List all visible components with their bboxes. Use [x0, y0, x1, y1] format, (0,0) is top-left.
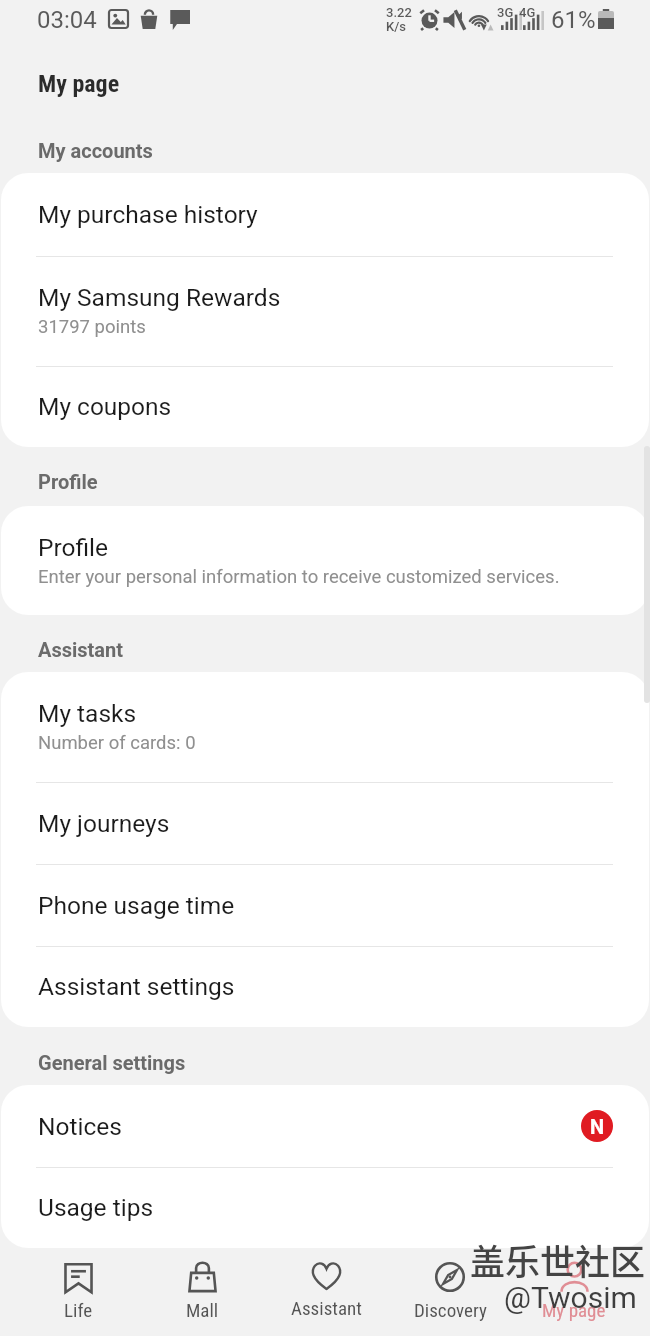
button[interactable]: My purchase history [0, 173, 650, 256]
staticText: My page [542, 1299, 606, 1321]
button[interactable]: Life [16, 1248, 140, 1336]
button[interactable]: Mall [140, 1248, 264, 1336]
staticText: Life [64, 1299, 93, 1321]
button[interactable]: Discovery [388, 1248, 512, 1336]
staticText: 3.22 [386, 5, 412, 20]
staticText: 03:04 [37, 6, 97, 34]
staticText: My journeys [38, 809, 170, 838]
staticText: K/s [386, 19, 406, 34]
staticText: My coupons [38, 392, 172, 421]
button[interactable]: My Samsung Rewards [0, 256, 650, 366]
staticText: Phone usage time [38, 891, 235, 920]
staticText: Number of cards: 0 [38, 732, 196, 754]
staticText: My purchase history [38, 200, 258, 229]
staticText: Usage tips [38, 1193, 154, 1222]
button[interactable]: My journeys [0, 782, 650, 864]
staticText: 3G [497, 5, 514, 20]
button[interactable]: Notices [0, 1085, 650, 1167]
staticText: 31797 points [38, 316, 146, 338]
button[interactable]: My page [512, 1248, 636, 1336]
staticText: Discovery [414, 1299, 487, 1321]
staticText: Enter your personal information to recei… [38, 566, 560, 588]
staticText: My accounts [38, 139, 153, 162]
staticText: Mall [186, 1299, 219, 1321]
button[interactable]: Profile [0, 506, 650, 615]
staticText: General settings [38, 1051, 186, 1074]
staticText: 4G [519, 5, 536, 20]
staticText: My tasks [38, 699, 137, 728]
button[interactable]: Assistant settings [0, 946, 650, 1027]
staticText: @Twosim [504, 1280, 637, 1315]
staticText: 61% [551, 6, 596, 34]
staticText: N [590, 1115, 605, 1138]
staticText: Profile [38, 470, 98, 493]
button[interactable]: My coupons [0, 366, 650, 447]
staticText: Assistant [291, 1297, 362, 1319]
staticText: Profile [38, 533, 109, 562]
button[interactable]: My tasks [0, 672, 650, 782]
button[interactable]: Usage tips [0, 1167, 650, 1248]
button[interactable]: Phone usage time [0, 864, 650, 946]
staticText: Notices [38, 1112, 122, 1141]
staticText: Assistant [38, 638, 123, 661]
staticText: My Samsung Rewards [38, 283, 281, 312]
staticText: Assistant settings [38, 972, 235, 1001]
staticText: My page [38, 70, 120, 98]
staticText: 盖乐世社区 [470, 1234, 646, 1285]
button[interactable]: Assistant [264, 1248, 388, 1336]
